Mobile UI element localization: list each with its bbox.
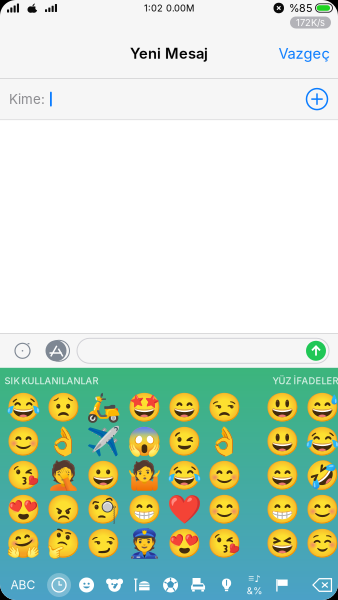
button[interactable]: Animals & Nature (100, 572, 128, 598)
button[interactable]: Emoji (124, 394, 164, 422)
button[interactable]: Emoji (3, 428, 43, 456)
button[interactable]: Emoji (124, 462, 164, 490)
button[interactable]: Emoji (204, 428, 245, 456)
staticText: ✈️ (86, 425, 121, 458)
button[interactable]: Emoji (43, 530, 84, 558)
button[interactable]: Emoji (204, 462, 245, 490)
staticText: 😊 (305, 493, 338, 526)
button[interactable]: Emoji (3, 462, 43, 490)
staticText: 😍 (167, 527, 202, 560)
staticText: ☰ (248, 575, 254, 583)
button[interactable]: Emoji (204, 394, 245, 422)
staticText: 😅 (305, 391, 338, 424)
button[interactable]: Smileys & People (72, 572, 100, 598)
button[interactable]: Emoji (204, 496, 245, 524)
button[interactable]: Objects (212, 572, 240, 598)
button[interactable]: Emoji (302, 428, 338, 456)
staticText: 😒 (207, 391, 242, 424)
button[interactable]: Emoji (164, 394, 204, 422)
staticText: 😁 (264, 493, 299, 526)
staticText: 1:02 0.00M (144, 2, 194, 14)
staticText: 😁 (127, 493, 162, 526)
button[interactable]: Emoji (164, 496, 204, 524)
staticText: ❤️ (167, 493, 202, 526)
button[interactable]: Emoji (204, 530, 245, 558)
staticText: 😘 (6, 459, 41, 492)
button[interactable]: Flags (268, 572, 296, 598)
button[interactable]: Emoji (262, 462, 302, 490)
staticText: ☺️ (305, 527, 338, 560)
staticText: 😠 (46, 493, 81, 526)
staticText: 😂 (167, 459, 202, 492)
staticText: 😍 (6, 493, 41, 526)
button[interactable]: Send (306, 341, 326, 361)
staticText: ♪ (255, 573, 261, 584)
button[interactable]: Emoji (124, 428, 164, 456)
button[interactable]: Travel & Places (184, 572, 212, 598)
button[interactable]: Emoji (164, 462, 204, 490)
staticText: 🧐 (86, 493, 121, 526)
button[interactable]: Emoji (43, 394, 84, 422)
button[interactable]: Emoji (124, 530, 164, 558)
staticText: 😃 (264, 425, 299, 458)
button[interactable]: Symbols (240, 572, 268, 598)
button[interactable]: Emoji (84, 394, 124, 422)
button[interactable]: Emoji (164, 428, 204, 456)
staticText: 🛵 (86, 391, 121, 424)
staticText: Yeni Mesaj (130, 45, 208, 62)
staticText: 🤗 (6, 527, 41, 560)
staticText: SIK KULLANILANLAR (4, 375, 98, 386)
staticText: 😊 (207, 493, 242, 526)
button[interactable]: Emoji (302, 394, 338, 422)
button[interactable]: Apps (39, 334, 73, 368)
staticText: 😄 (264, 459, 299, 492)
staticText: 👮 (127, 527, 162, 560)
button[interactable]: Emoji (43, 462, 84, 490)
staticText: 😱 (127, 425, 162, 458)
staticText: 😘 (207, 527, 242, 560)
staticText: & (247, 585, 253, 597)
staticText: 😄 (167, 391, 202, 424)
button[interactable]: Emoji (43, 496, 84, 524)
staticText: 172K/s (296, 17, 325, 28)
staticText: 😀 (86, 459, 121, 492)
button[interactable]: Emoji (3, 496, 43, 524)
staticText: ABC (10, 578, 35, 592)
button[interactable]: Emoji (262, 428, 302, 456)
staticText: % (253, 585, 262, 597)
button[interactable]: Emoji (262, 496, 302, 524)
staticText: 😆 (264, 527, 299, 560)
staticText: 😂 (6, 391, 41, 424)
staticText: 🤣 (305, 459, 338, 492)
staticText: 🤦 (46, 459, 81, 492)
button[interactable]: Emoji (84, 530, 124, 558)
button[interactable]: Emoji (262, 394, 302, 422)
button[interactable]: Recently used (45, 572, 72, 598)
button[interactable]: Add contact (302, 84, 332, 114)
button[interactable]: Camera (6, 334, 39, 368)
staticText: 😊 (207, 459, 242, 492)
button[interactable]: Delete (305, 572, 338, 598)
button[interactable]: Emoji (262, 530, 302, 558)
button[interactable]: Emoji (3, 394, 43, 422)
staticText: 👌 (46, 425, 81, 458)
button[interactable]: Vazgeç (270, 31, 338, 75)
button[interactable]: Emoji (43, 428, 84, 456)
button[interactable]: ABC (0, 572, 45, 598)
button[interactable]: Emoji (302, 496, 338, 524)
button[interactable]: Emoji (164, 530, 204, 558)
staticText: %85 (289, 1, 312, 14)
staticText: Vazgeç (278, 45, 329, 62)
button[interactable]: Activity (156, 572, 184, 598)
button[interactable]: Emoji (84, 428, 124, 456)
button[interactable]: Emoji (3, 530, 43, 558)
button[interactable]: Emoji (124, 496, 164, 524)
button[interactable]: Emoji (84, 462, 124, 490)
button[interactable]: Emoji (302, 462, 338, 490)
button[interactable]: Emoji (84, 496, 124, 524)
staticText: 😉 (167, 425, 202, 458)
staticText: 🤔 (46, 527, 81, 560)
button[interactable]: Emoji (302, 530, 338, 558)
button[interactable]: Food & Drink (128, 572, 156, 598)
staticText: 🤷 (127, 459, 162, 492)
